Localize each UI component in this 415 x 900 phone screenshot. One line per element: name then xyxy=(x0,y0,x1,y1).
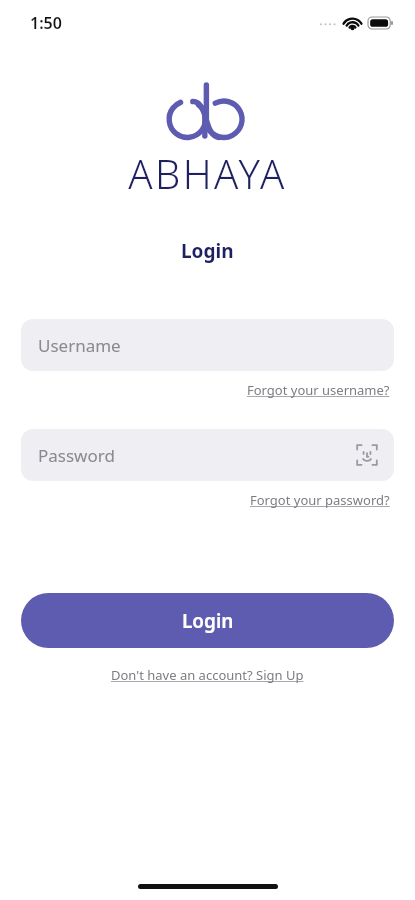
staticText: Forgot your username? xyxy=(247,381,390,399)
staticText: Forgot your password? xyxy=(250,491,390,509)
button[interactable]: Forgot your username? xyxy=(243,378,394,402)
staticText: Password xyxy=(38,444,115,467)
button[interactable]: Forgot your password? xyxy=(246,488,394,512)
staticText: Login xyxy=(181,238,234,264)
staticText: Don't have an account? Sign Up xyxy=(111,666,304,684)
staticText: Username xyxy=(38,334,121,357)
button[interactable]: Don't have an account? Sign Up xyxy=(105,664,310,686)
staticText: Login xyxy=(182,608,234,634)
staticText: ABHAYA xyxy=(128,146,287,200)
button[interactable]: Password xyxy=(21,429,394,481)
staticText: 1:50 xyxy=(30,12,62,34)
button[interactable]: Login xyxy=(21,593,394,648)
button[interactable]: Sign in with Face ID xyxy=(354,442,380,468)
button[interactable]: Username xyxy=(21,319,394,371)
